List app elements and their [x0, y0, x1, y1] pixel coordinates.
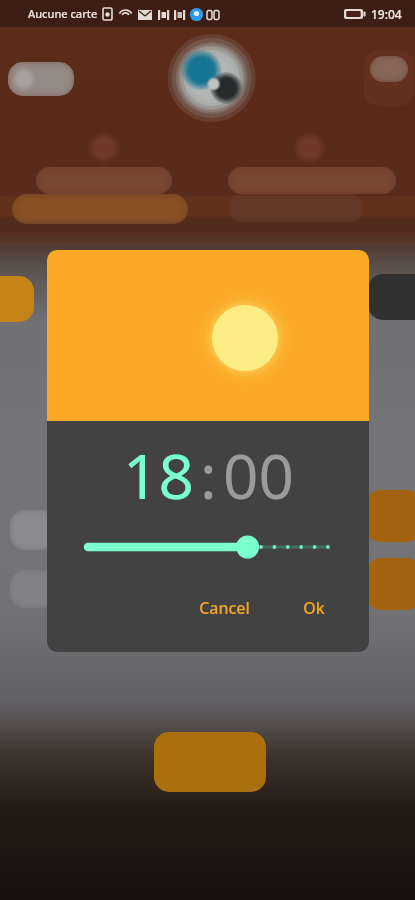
button[interactable]: Hour slider [88, 531, 328, 563]
staticText: 19:04 [371, 6, 402, 22]
button[interactable]: 00 [223, 433, 294, 517]
button[interactable]: 18 [123, 433, 194, 517]
staticText: Ok [303, 597, 325, 619]
staticText: Cancel [199, 597, 250, 619]
button[interactable]: Ok [293, 590, 335, 626]
staticText: Aucune carte [28, 6, 98, 21]
button[interactable]: Cancel [189, 590, 260, 626]
staticText: : [200, 433, 217, 517]
